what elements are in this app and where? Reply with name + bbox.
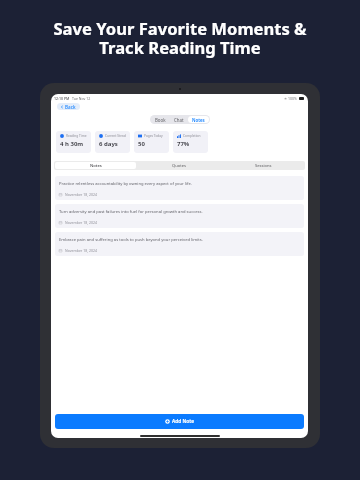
- staticText: November 18, 2024: [65, 192, 98, 197]
- staticText: Notes: [90, 163, 102, 169]
- button[interactable]: Completion: [173, 131, 208, 153]
- button[interactable]: Current Streak: [95, 131, 130, 153]
- staticText: Tue Nov 12: [72, 96, 91, 101]
- staticText: Turn adversity and past failures into fu…: [59, 209, 203, 215]
- staticText: Save Your Favorite Moments & Track Readi…: [53, 17, 307, 59]
- staticText: Add Note: [172, 418, 194, 425]
- staticText: November 18, 2024: [65, 220, 98, 225]
- button[interactable]: Embrace pain and suffering as tools to p…: [55, 232, 304, 256]
- staticText: 100%: [288, 96, 297, 101]
- button[interactable]: Add Note: [55, 414, 304, 429]
- staticText: Completion: [183, 134, 201, 138]
- staticText: 12:10 PM: [54, 96, 70, 101]
- button[interactable]: Notes: [188, 116, 209, 123]
- staticText: Embrace pain and suffering as tools to p…: [59, 237, 203, 243]
- staticText: Quotes: [172, 163, 186, 169]
- button[interactable]: Pages Today: [134, 131, 169, 153]
- staticText: Book: [155, 117, 166, 123]
- staticText: Reading Time: [66, 134, 87, 138]
- staticText: 4 h 30m: [60, 140, 84, 148]
- button[interactable]: Reading Time: [56, 131, 91, 153]
- staticText: Current Streak: [105, 134, 126, 138]
- staticText: Pages Today: [144, 134, 163, 138]
- button[interactable]: Sessions: [222, 162, 304, 169]
- button[interactable]: Turn adversity and past failures into fu…: [55, 204, 304, 228]
- staticText: 6 days: [99, 140, 118, 148]
- staticText: November 18, 2024: [65, 248, 98, 253]
- button[interactable]: Quotes: [138, 162, 220, 169]
- button[interactable]: Notes: [55, 162, 136, 169]
- staticText: Sessions: [255, 163, 272, 169]
- staticText: Chat: [174, 117, 184, 123]
- button[interactable]: Back: [57, 103, 80, 110]
- staticText: Notes: [192, 117, 205, 123]
- button[interactable]: Chat: [170, 116, 188, 123]
- staticText: 50: [138, 140, 145, 148]
- staticText: 77%: [177, 140, 190, 148]
- staticText: Back: [65, 104, 76, 110]
- staticText: Practice relentless accountability by ow…: [59, 181, 192, 187]
- button[interactable]: Book: [151, 116, 170, 123]
- button[interactable]: Practice relentless accountability by ow…: [55, 176, 304, 200]
